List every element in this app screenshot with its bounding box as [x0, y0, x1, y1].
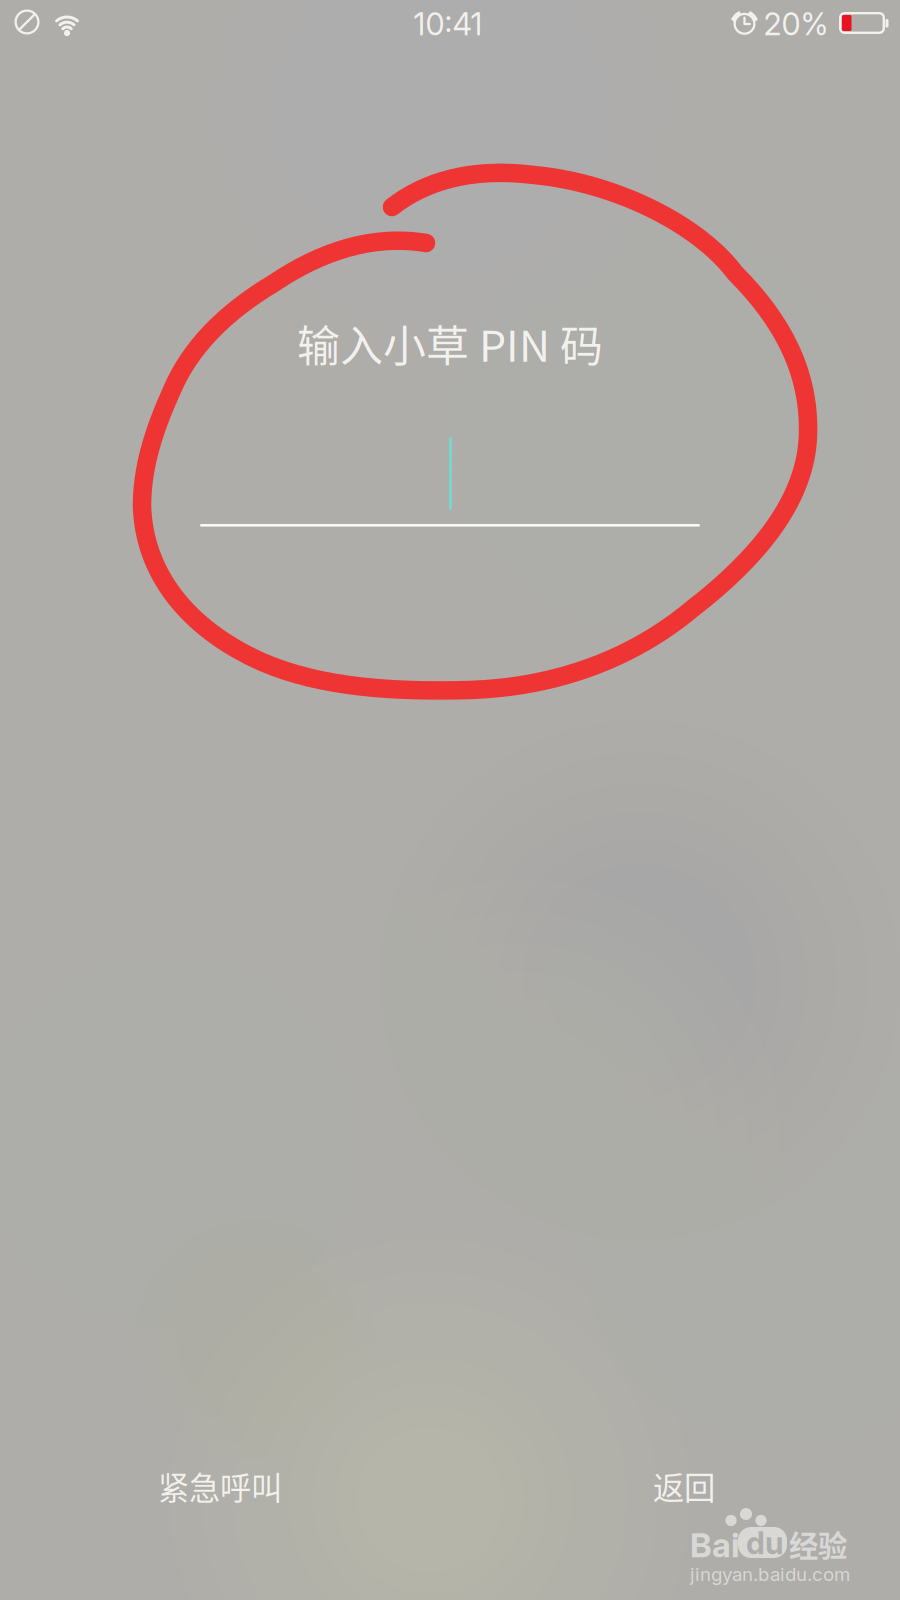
staticText: 20%: [763, 5, 828, 42]
staticText: jingyan.baidu.com: [690, 1563, 850, 1586]
staticText: 紧急呼叫: [158, 1463, 282, 1509]
staticText: 返回: [653, 1463, 715, 1509]
staticText: du: [746, 1524, 784, 1561]
staticText: 输入小草 PIN 码: [297, 312, 603, 374]
button[interactable]: 紧急呼叫: [130, 1460, 310, 1512]
button[interactable]: 返回: [624, 1460, 744, 1512]
staticText: 经验: [789, 1523, 847, 1565]
staticText: Bai: [690, 1525, 740, 1565]
staticText: 10:41: [413, 5, 482, 42]
